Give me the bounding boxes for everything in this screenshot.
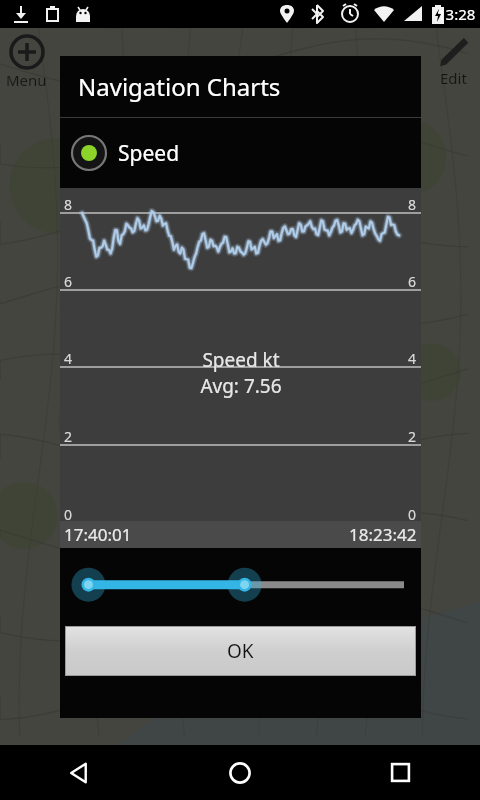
staticText: 4: [408, 349, 417, 368]
button[interactable]: OK: [66, 627, 415, 675]
staticText: Navigation Charts: [78, 70, 281, 103]
staticText: 0: [64, 505, 73, 524]
staticText: 0: [408, 505, 417, 524]
staticText: 17:40:01: [64, 523, 132, 546]
button[interactable]: Back: [0, 745, 160, 800]
button[interactable]: Recents: [320, 745, 480, 800]
staticText: Edit: [440, 68, 467, 88]
staticText: 18:23:42: [349, 523, 417, 546]
staticText: Avg: 7.56: [200, 373, 282, 399]
staticText: Menu: [6, 70, 47, 90]
button[interactable]: Speed: [60, 118, 421, 188]
button[interactable]: Edit: [432, 30, 474, 92]
staticText: 6: [408, 272, 417, 291]
staticText: 2: [408, 427, 417, 446]
staticText: Speed: [118, 139, 180, 168]
staticText: 4: [64, 349, 73, 368]
button[interactable]: [60, 548, 421, 626]
staticText: OK: [227, 638, 254, 664]
staticText: 8: [64, 195, 73, 214]
button[interactable]: Menu: [2, 30, 51, 94]
staticText: 8: [408, 195, 417, 214]
staticText: 13:28: [437, 4, 476, 24]
staticText: 2: [64, 427, 73, 446]
button[interactable]: Home: [160, 745, 320, 800]
staticText: 6: [64, 272, 73, 291]
other: Edit: [436, 34, 470, 68]
staticText: Speed kt: [202, 347, 280, 373]
other: Menu: [9, 34, 45, 70]
